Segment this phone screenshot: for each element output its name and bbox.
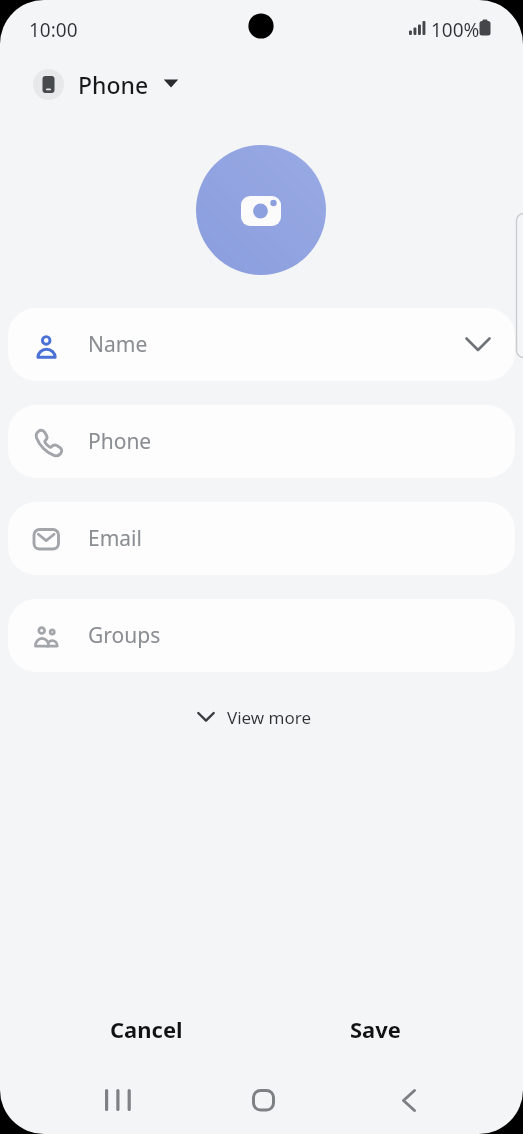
button[interactable]: Cancel <box>76 999 216 1059</box>
staticText: Email <box>88 524 142 553</box>
button[interactable]: View more <box>172 697 337 737</box>
button[interactable] <box>90 1074 148 1126</box>
staticText: 10:00 <box>29 17 78 43</box>
staticText: Phone <box>78 69 149 100</box>
button[interactable]: Phone <box>8 405 515 478</box>
staticText: Cancel <box>110 1014 183 1044</box>
button[interactable] <box>380 1074 438 1126</box>
staticText: Phone <box>88 427 152 456</box>
button[interactable]: Name <box>8 308 515 381</box>
button[interactable]: Save <box>305 999 445 1059</box>
staticText: View more <box>227 706 312 729</box>
button[interactable] <box>196 145 326 275</box>
staticText: Save <box>350 1014 401 1044</box>
button[interactable] <box>235 1074 293 1126</box>
button[interactable]: Phone <box>33 66 179 102</box>
button[interactable]: Email <box>8 502 515 575</box>
staticText: 100% <box>431 17 480 43</box>
staticText: Groups <box>88 621 161 650</box>
staticText: Name <box>88 330 148 359</box>
button[interactable]: Groups <box>8 599 515 672</box>
